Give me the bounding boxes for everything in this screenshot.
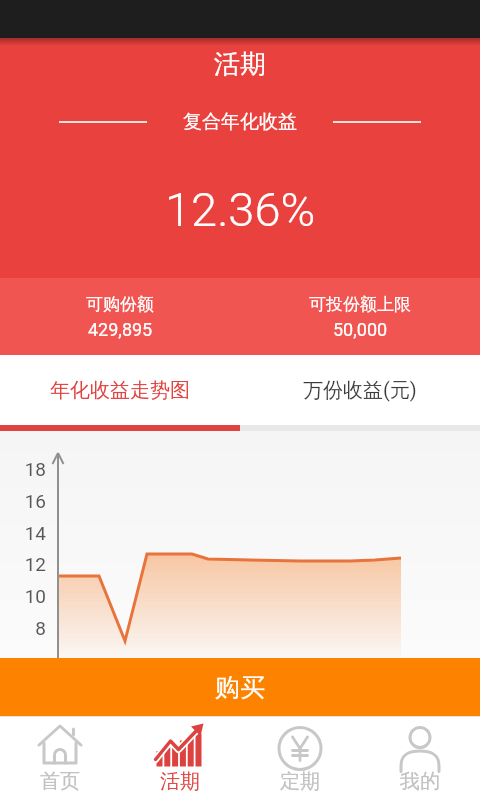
staticText: 12.36%: [165, 182, 316, 237]
staticText: 14: [14, 522, 46, 544]
staticText: 10: [14, 585, 46, 607]
staticText: 可购份额: [86, 294, 154, 315]
staticText: 活期: [214, 48, 266, 81]
staticText: 复合年化收益: [183, 110, 297, 134]
staticText: 8: [14, 617, 46, 639]
button[interactable]: 定期: [240, 716, 360, 800]
staticText: 定期: [280, 769, 320, 794]
button[interactable]: 活期: [120, 716, 240, 800]
staticText: 12: [14, 553, 46, 575]
staticText: 活期: [160, 769, 200, 794]
staticText: 首页: [40, 769, 80, 794]
staticText: 购买: [215, 672, 265, 703]
staticText: 429,895: [88, 319, 153, 340]
staticText: 万份收益(元): [303, 378, 417, 403]
staticText: 年化收益走势图: [50, 378, 190, 403]
button[interactable]: 购买: [0, 658, 480, 716]
button[interactable]: 首页: [0, 716, 120, 800]
staticText: 18: [14, 458, 46, 480]
button[interactable]: 年化收益走势图: [0, 355, 240, 425]
staticText: 我的: [400, 769, 440, 794]
button[interactable]: 我的: [360, 716, 480, 800]
button[interactable]: 万份收益(元): [240, 355, 480, 425]
staticText: 可投份额上限: [309, 294, 411, 315]
staticText: 50,000: [333, 319, 388, 340]
staticText: 16: [14, 490, 46, 512]
